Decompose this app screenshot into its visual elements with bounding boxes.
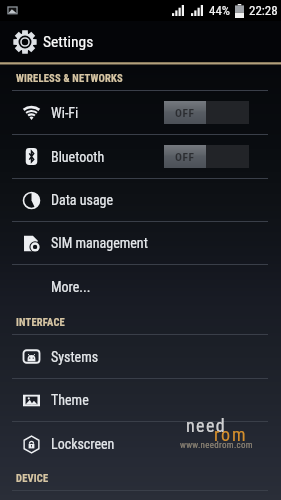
staticText: SIM management (51, 235, 148, 251)
staticText: OFF (175, 150, 195, 163)
button[interactable]: Bluetooth (0, 135, 281, 178)
button[interactable]: OFF (164, 101, 249, 124)
button[interactable]: Theme (0, 379, 281, 421)
staticText: More... (51, 279, 91, 295)
staticText: Wi-Fi (51, 105, 79, 121)
button[interactable]: SIM management (0, 222, 281, 264)
button[interactable]: Data usage (0, 179, 281, 221)
staticText: need (186, 415, 227, 436)
button[interactable]: Systems (0, 335, 281, 378)
other: Settings icon (13, 30, 37, 54)
staticText: INTERFACE (16, 316, 65, 328)
staticText: Bluetooth (51, 149, 105, 165)
staticText: OFF (175, 106, 195, 119)
staticText: DEVICE (16, 472, 49, 484)
staticText: Theme (51, 392, 89, 408)
staticText: 44% (209, 3, 231, 18)
staticText: WIRELESS & NETWORKS (16, 72, 123, 84)
button[interactable]: Lockscreen (0, 422, 281, 466)
button[interactable]: Settings icon (0, 21, 281, 62)
button[interactable]: Wi-Fi (0, 91, 281, 134)
staticText: Settings (43, 33, 94, 51)
button[interactable]: More... (0, 265, 281, 309)
staticText: Systems (51, 349, 99, 365)
staticText: rom (214, 424, 248, 445)
staticText: www.needrom.com (180, 440, 253, 451)
staticText: 22:28 (249, 3, 278, 18)
button[interactable]: OFF (164, 145, 249, 168)
staticText: Data usage (51, 192, 114, 208)
staticText: Lockscreen (51, 436, 115, 452)
